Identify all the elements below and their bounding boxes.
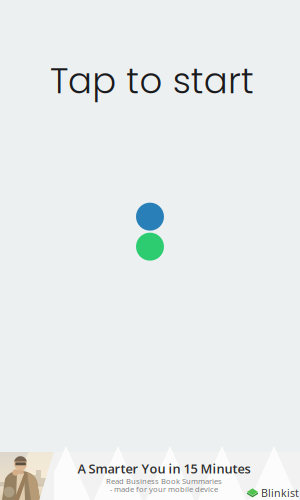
staticText: Blinkist	[261, 485, 299, 500]
button[interactable]: Tap to start	[46, 56, 254, 106]
staticText: Read Business Book Summaries	[106, 476, 222, 486]
button[interactable]: A Smarter You in 15 Minutes	[0, 452, 300, 500]
staticText: - made for your mobile device	[110, 484, 218, 494]
staticText: Tap to start	[50, 56, 254, 106]
staticText: A Smarter You in 15 Minutes	[77, 460, 250, 477]
